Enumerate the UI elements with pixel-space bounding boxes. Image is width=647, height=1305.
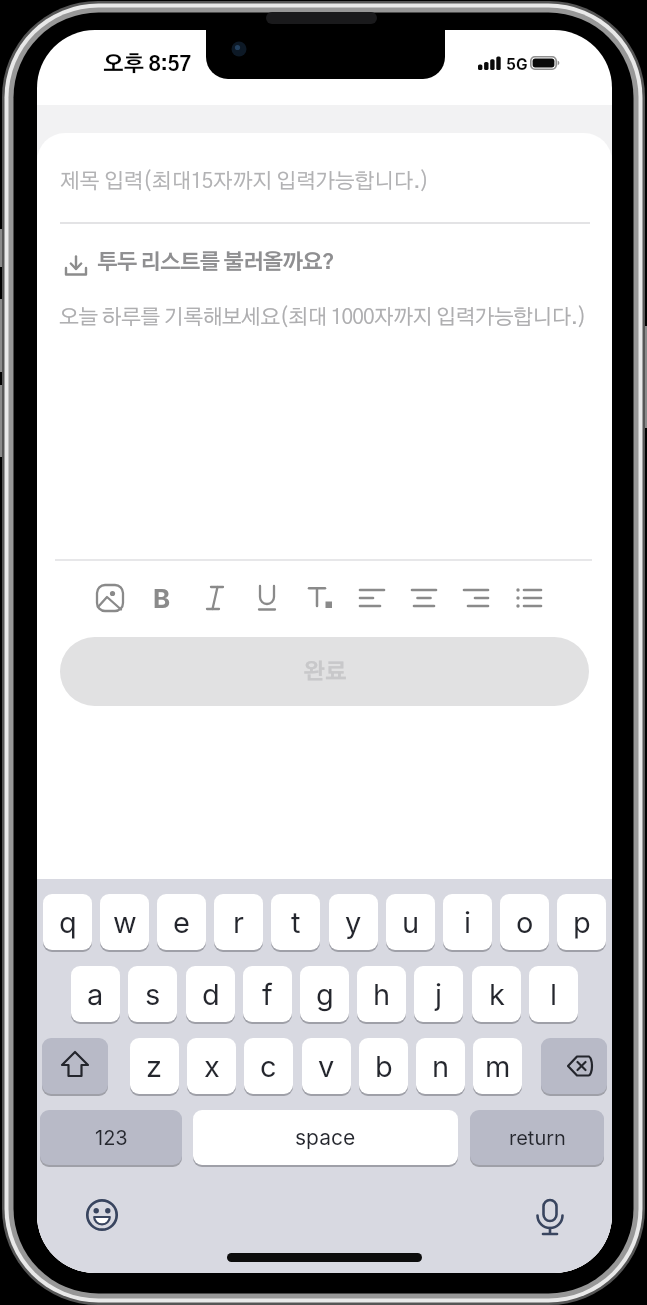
staticText: m <box>485 1049 511 1084</box>
button[interactable]: s <box>128 966 177 1022</box>
button[interactable]: space <box>193 1110 458 1165</box>
button[interactable] <box>529 1196 571 1242</box>
button[interactable] <box>511 580 547 616</box>
staticText: 제목 입력(최대15자까지 입력가능합니다.) <box>60 171 429 192</box>
button[interactable]: r <box>214 894 263 950</box>
button[interactable]: u <box>386 894 435 950</box>
staticText: f <box>262 977 273 1012</box>
button[interactable]: 완료 <box>60 637 589 706</box>
button[interactable]: f <box>243 966 292 1022</box>
button[interactable]: v <box>302 1038 351 1094</box>
staticText: w <box>113 905 137 940</box>
button[interactable]: o <box>500 894 549 950</box>
button[interactable]: p <box>557 894 606 950</box>
staticText: l <box>550 977 558 1012</box>
staticText: 완료 <box>303 661 347 683</box>
button[interactable]: z <box>130 1038 179 1094</box>
button[interactable] <box>249 580 285 616</box>
button[interactable] <box>302 580 338 616</box>
button[interactable]: m <box>473 1038 522 1094</box>
button[interactable]: return <box>470 1110 604 1165</box>
button[interactable]: x <box>187 1038 236 1094</box>
staticText: b <box>375 1049 393 1084</box>
button[interactable]: d <box>186 966 235 1022</box>
button[interactable]: w <box>100 894 149 950</box>
staticText: 오늘 하루를 기록해보세요(최대 1000자까지 입력가능합니다.) <box>59 307 586 328</box>
staticText: B <box>153 583 171 614</box>
staticText: q <box>59 905 77 940</box>
button[interactable]: q <box>43 894 92 950</box>
button[interactable]: a <box>71 966 120 1022</box>
button[interactable] <box>197 580 233 616</box>
staticText: u <box>402 905 420 940</box>
button[interactable]: c <box>244 1038 293 1094</box>
button[interactable]: j <box>414 966 463 1022</box>
button[interactable]: k <box>472 966 521 1022</box>
button[interactable] <box>42 1038 108 1094</box>
staticText: i <box>464 905 472 940</box>
staticText: 5G <box>506 55 528 74</box>
button[interactable] <box>81 1194 123 1236</box>
button[interactable]: B <box>144 580 180 616</box>
button[interactable]: 123 <box>40 1110 182 1165</box>
staticText: z <box>146 1049 163 1084</box>
staticText: 123 <box>95 1126 128 1150</box>
staticText: 오후 8:57 <box>103 54 192 75</box>
staticText: 투두 리스트를 불러올까요? <box>97 252 334 273</box>
button[interactable]: e <box>157 894 206 950</box>
button[interactable]: h <box>357 966 406 1022</box>
button[interactable]: t <box>271 894 320 950</box>
staticText: t <box>291 905 301 940</box>
button[interactable]: i <box>443 894 492 950</box>
staticText: k <box>489 977 505 1012</box>
staticText: h <box>373 977 391 1012</box>
button[interactable] <box>407 580 443 616</box>
staticText: y <box>345 905 362 940</box>
staticText: a <box>87 977 104 1012</box>
button[interactable]: b <box>359 1038 408 1094</box>
button[interactable] <box>355 580 391 616</box>
button[interactable] <box>459 580 495 616</box>
staticText: c <box>260 1049 277 1084</box>
button[interactable]: y <box>329 894 378 950</box>
button[interactable] <box>92 580 128 616</box>
button[interactable]: 투두 리스트를 불러올까요? <box>57 246 397 286</box>
button[interactable] <box>541 1038 607 1094</box>
staticText: r <box>233 905 244 940</box>
staticText: j <box>435 977 443 1012</box>
staticText: space <box>295 1125 356 1150</box>
staticText: d <box>202 977 220 1012</box>
button[interactable]: l <box>529 966 578 1022</box>
staticText: return <box>509 1126 566 1150</box>
staticText: g <box>316 977 334 1012</box>
button[interactable]: g <box>300 966 349 1022</box>
button[interactable]: n <box>416 1038 465 1094</box>
staticText: e <box>173 905 190 940</box>
staticText: o <box>516 905 534 940</box>
staticText: s <box>145 977 161 1012</box>
staticText: x <box>204 1049 220 1084</box>
staticText: v <box>318 1049 335 1084</box>
staticText: n <box>432 1049 450 1084</box>
staticText: p <box>573 905 591 940</box>
